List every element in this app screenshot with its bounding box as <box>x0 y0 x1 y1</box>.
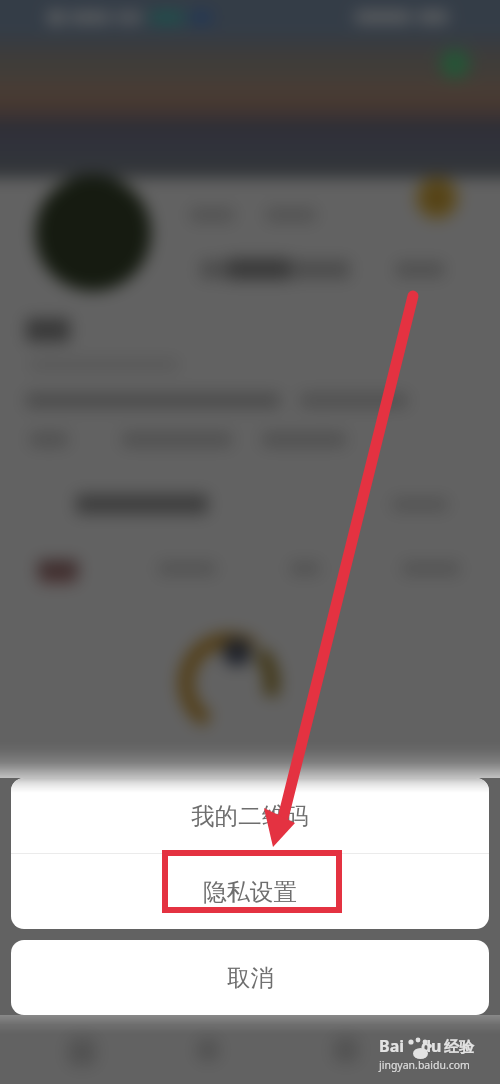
button[interactable]: 取消 <box>11 940 489 1015</box>
staticText: 经验 <box>444 1038 474 1057</box>
staticText: jingyan.baidu.com <box>379 1058 470 1072</box>
button[interactable]: 隐私设置 <box>11 854 489 929</box>
staticText: du <box>421 1035 442 1057</box>
button[interactable]: 取消 <box>11 940 489 1015</box>
button[interactable]: 我的二维码 <box>11 778 489 853</box>
staticText: 取消 <box>227 963 274 993</box>
staticText: 我的二维码 <box>191 801 309 831</box>
staticText: Bai <box>379 1035 405 1057</box>
staticText: 隐私设置 <box>203 877 297 907</box>
